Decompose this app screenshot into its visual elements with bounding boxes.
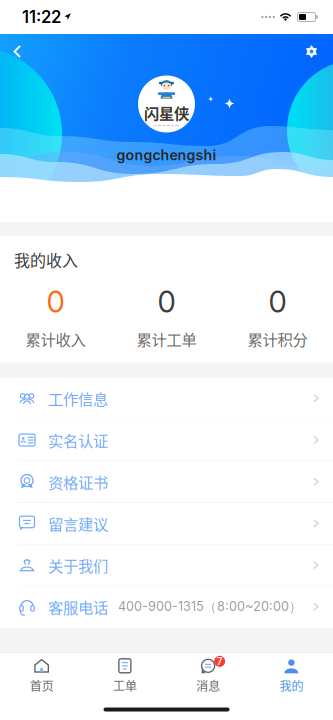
staticText: 我的 (279, 677, 303, 694)
staticText: 400-900-1315（8:00~20:00） (118, 599, 302, 615)
button[interactable]: 实名认证 (0, 420, 333, 461)
staticText: 资格证书 (48, 471, 108, 493)
staticText: 0 (157, 284, 175, 320)
staticText: gongchengshi (116, 146, 216, 164)
staticText: 11:22 (22, 7, 61, 27)
staticText: 客服电话 (48, 596, 108, 618)
staticText: 0 (268, 284, 286, 320)
staticText: 工单 (113, 677, 137, 694)
staticText: 实名认证 (48, 429, 108, 451)
button[interactable]: 客服电话 (0, 586, 333, 627)
staticText: 累计工单 (136, 328, 196, 350)
button[interactable]: 资格证书 (0, 461, 333, 502)
button[interactable]: 首页 (0, 653, 83, 699)
button[interactable]: 我的 (250, 653, 333, 699)
staticText: 关于我们 (48, 554, 108, 576)
button[interactable]: 工作信息 (0, 378, 333, 419)
button[interactable]: 关于我们 (0, 545, 333, 586)
staticText: 我的收入 (14, 248, 78, 271)
staticText: 闪星侠 (144, 101, 189, 123)
button[interactable]: 工单 (83, 653, 166, 699)
staticText: 首页 (30, 677, 54, 694)
staticText: 消息 (196, 677, 220, 694)
staticText: 0 (46, 284, 64, 320)
staticText: 工作信息 (48, 387, 108, 409)
button[interactable]: 7 (166, 653, 250, 699)
staticText: 累计积分 (247, 328, 307, 350)
button[interactable]: 留言建议 (0, 503, 333, 544)
staticText: 累计收入 (25, 328, 85, 350)
staticText: 留言建议 (48, 512, 108, 535)
button[interactable]: Back (0, 39, 33, 64)
button[interactable]: Settings (294, 39, 333, 64)
staticText: 7 (217, 655, 223, 667)
